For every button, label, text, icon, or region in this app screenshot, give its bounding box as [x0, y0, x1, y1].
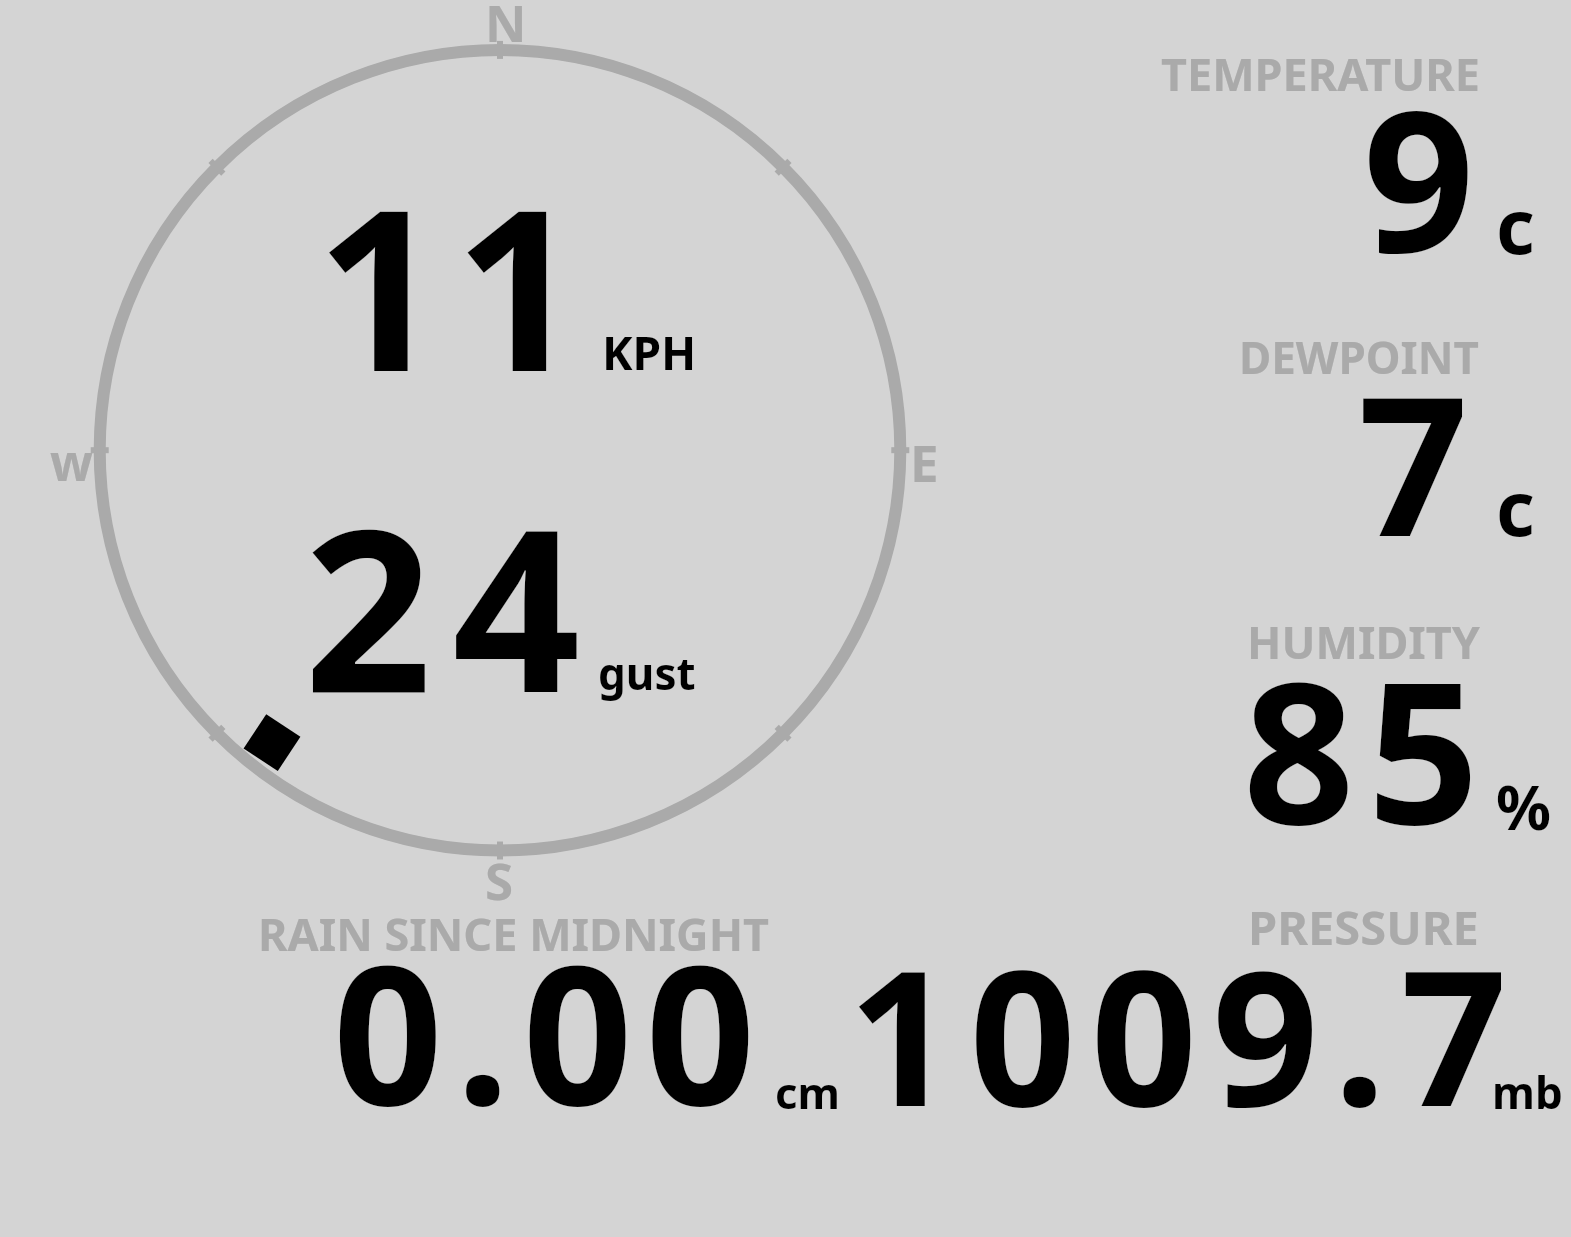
staticText: 7 [1358, 330, 1469, 593]
staticText: 11 [316, 134, 593, 436]
staticText: mb [1492, 1062, 1563, 1122]
staticText: RAIN SINCE MIDNIGHT [258, 903, 770, 964]
staticText: 1009.7 [848, 907, 1523, 1160]
staticText: HUMIDITY [1247, 611, 1480, 672]
staticText: DEWPOINT [1239, 327, 1479, 387]
staticText: 0.00 [333, 900, 769, 1162]
staticText: PRESSURE [1248, 895, 1479, 959]
staticText: c [1496, 456, 1535, 558]
staticText: % [1496, 765, 1552, 848]
staticText: 85 [1243, 616, 1493, 882]
staticText: c [1496, 174, 1535, 276]
staticText: 24 [304, 453, 601, 758]
staticText: S [485, 845, 514, 914]
staticText: cm [775, 1062, 840, 1121]
staticText: gust [598, 643, 696, 703]
staticText: N [485, 0, 527, 56]
staticText: w [50, 428, 93, 496]
other: Weather dashboard [0, 0, 1571, 1237]
staticText: KPH [602, 321, 697, 384]
staticText: E [910, 427, 939, 496]
staticText: 9 [1363, 44, 1475, 310]
staticText: TEMPERATURE [1161, 43, 1480, 104]
